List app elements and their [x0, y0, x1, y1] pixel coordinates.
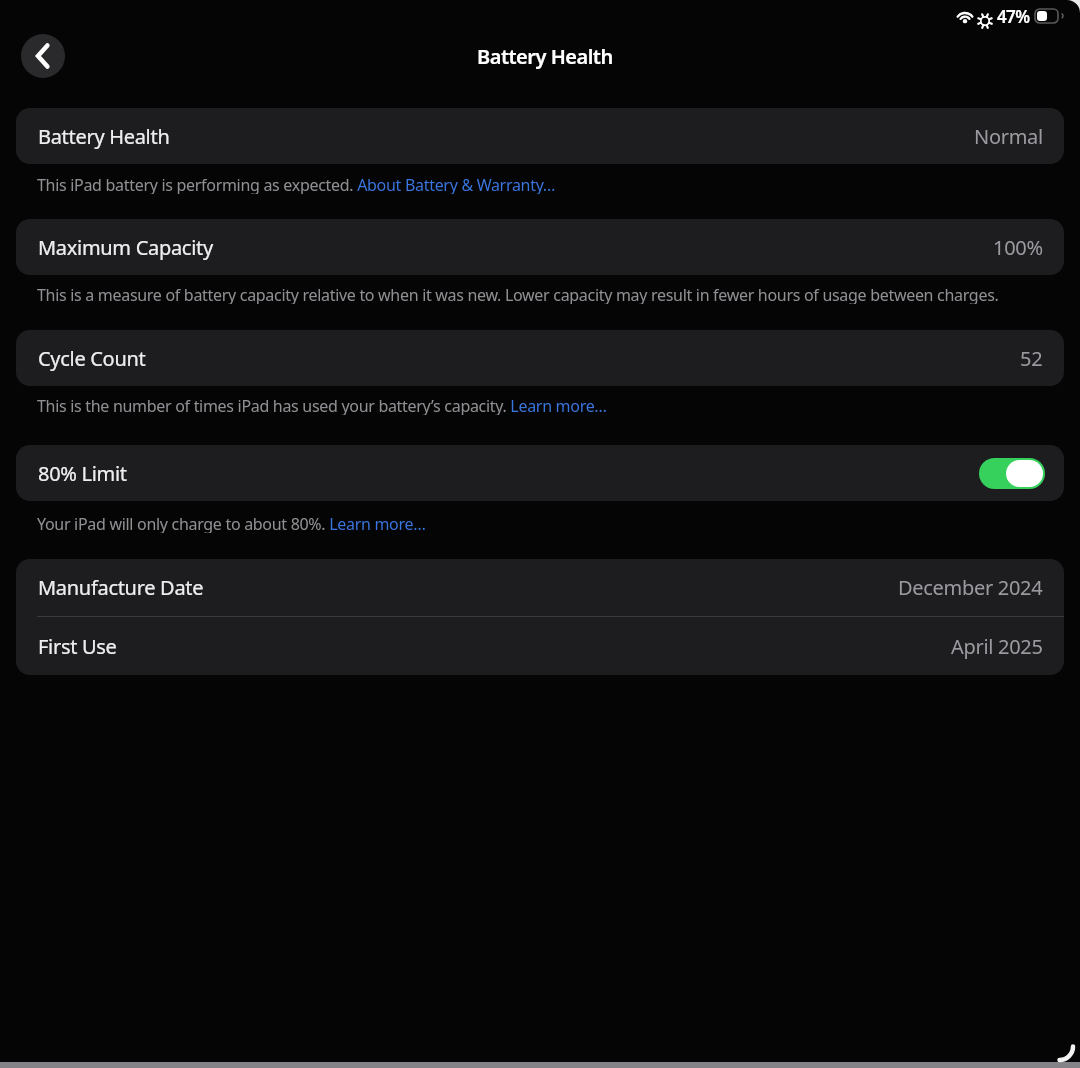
staticText: 100%	[993, 234, 1043, 261]
staticText: Manufacture Date	[38, 574, 204, 601]
staticText: 47%	[997, 5, 1030, 27]
button[interactable]: Battery Health	[16, 108, 1064, 164]
staticText: This is the number of times iPad has use…	[37, 395, 607, 415]
staticText: This is a measure of battery capacity re…	[37, 284, 999, 304]
staticText: Battery Health	[477, 43, 613, 70]
staticText: First Use	[38, 633, 117, 660]
button[interactable]: Cycle Count	[16, 330, 1064, 386]
staticText: Normal	[974, 123, 1043, 150]
button[interactable]	[979, 458, 1045, 489]
staticText: Maximum Capacity	[38, 234, 213, 261]
staticText: Your iPad will only charge to about 80%.…	[37, 513, 426, 533]
staticText: 80% Limit	[38, 460, 127, 487]
button[interactable]	[21, 34, 65, 78]
staticText: This iPad battery is performing as expec…	[37, 174, 556, 194]
button[interactable]: Maximum Capacity	[16, 219, 1064, 275]
staticText: April 2025	[951, 633, 1043, 660]
button[interactable]: Manufacture Date	[16, 559, 1064, 675]
staticText: 52	[1020, 345, 1043, 372]
staticText: Cycle Count	[38, 345, 146, 372]
staticText: Battery Health	[38, 123, 170, 150]
button[interactable]: 80% Limit	[16, 445, 1064, 501]
staticText: December 2024	[898, 574, 1043, 601]
